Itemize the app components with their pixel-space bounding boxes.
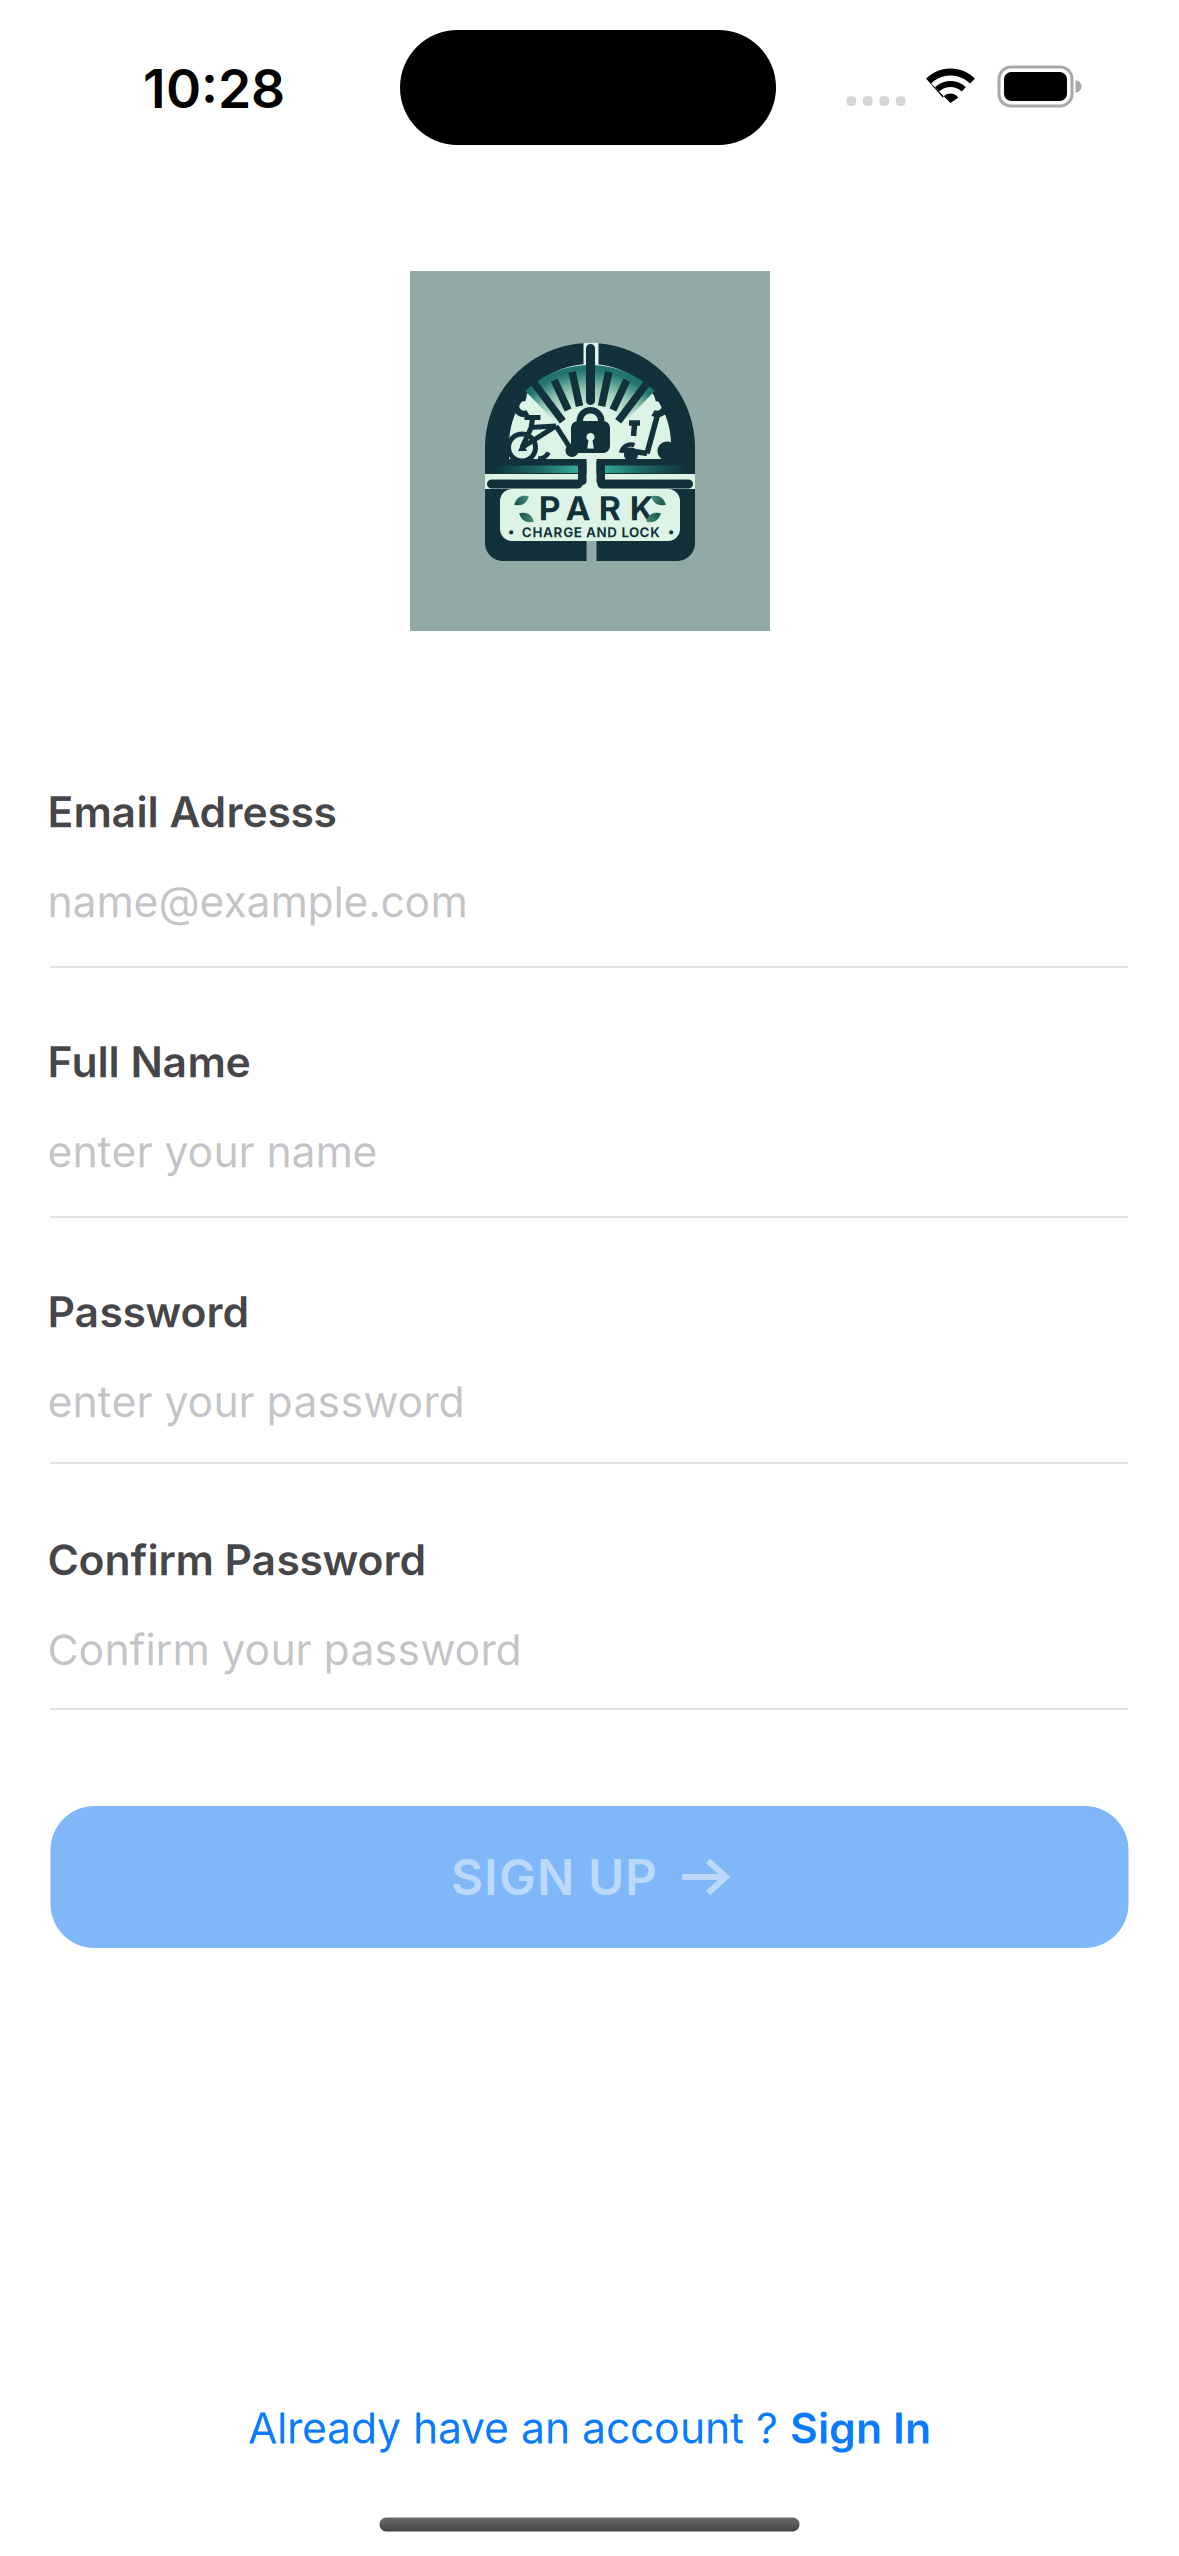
button[interactable]: Already have an account ? Sign In [248,2403,931,2453]
staticText: Email Adresss [47,786,336,838]
staticText: • CHARGE AND LOCK • [508,524,674,540]
staticText: enter your name [47,1126,377,1178]
staticText: Confirm your password [47,1624,521,1676]
staticText: Password [47,1286,249,1338]
button[interactable]: SIGN UP [50,1806,1128,1948]
staticText: Already have an account ? Sign In [248,2403,931,2453]
staticText: enter your password [47,1376,464,1428]
staticText: Confirm Password [47,1534,426,1586]
staticText: name@example.com [47,876,467,928]
staticText: PARK [539,488,653,528]
staticText: SIGN UP [451,1847,657,1907]
staticText: Full Name [47,1036,250,1088]
staticText: 10:28 [143,56,285,121]
